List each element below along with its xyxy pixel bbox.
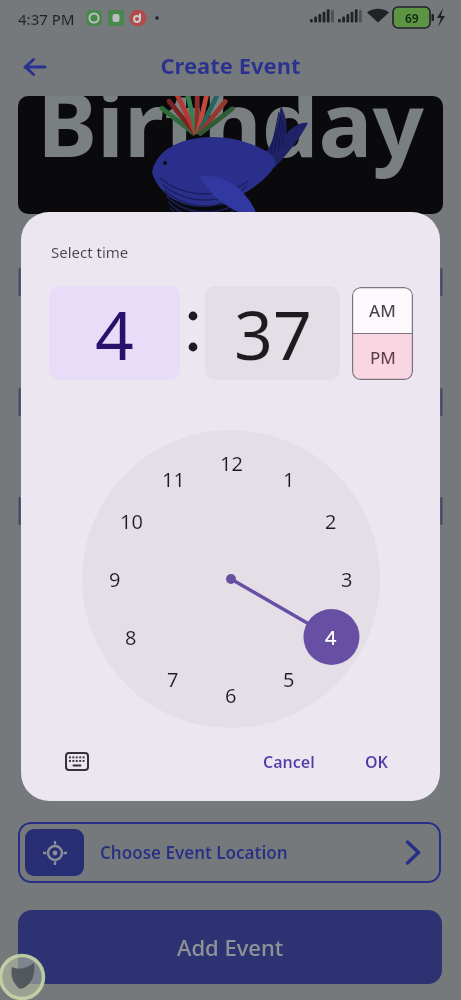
staticText: 8 xyxy=(125,624,137,651)
staticText: 1 xyxy=(283,466,295,493)
button[interactable]: 7 xyxy=(153,659,193,699)
button[interactable]: 5 xyxy=(269,659,309,699)
button[interactable]: 37 xyxy=(205,286,340,380)
button[interactable]: OK xyxy=(345,744,407,780)
staticText: 2 xyxy=(325,508,337,535)
button[interactable]: PM xyxy=(352,334,413,380)
button[interactable]: 9 xyxy=(95,559,135,599)
staticText: Cancel xyxy=(263,751,315,773)
button[interactable]: 6 xyxy=(211,675,251,715)
staticText: Select time xyxy=(51,242,129,262)
staticText: 10 xyxy=(120,508,143,535)
button[interactable]: 4 xyxy=(311,617,351,657)
button[interactable]: 11 xyxy=(153,459,193,499)
button[interactable]: 2 xyxy=(311,501,351,541)
button[interactable]: Cancel xyxy=(249,744,329,780)
button[interactable]: 8 xyxy=(111,617,151,657)
staticText: Birthday xyxy=(18,96,443,179)
button[interactable] xyxy=(18,50,52,84)
staticText: PM xyxy=(370,346,396,369)
staticText: 5 xyxy=(283,666,295,693)
button[interactable]: 4 xyxy=(49,286,180,380)
staticText: OK xyxy=(365,751,388,773)
staticText: 12 xyxy=(220,450,243,477)
button[interactable]: Choose Event Location xyxy=(18,822,441,883)
staticText: Create Event xyxy=(0,50,461,80)
button[interactable]: 10 xyxy=(111,501,151,541)
button[interactable]: Add Event xyxy=(18,910,442,984)
button[interactable]: 12 xyxy=(211,443,251,483)
staticText: 11 xyxy=(162,466,185,493)
staticText: 9 xyxy=(109,566,121,593)
staticText: 7 xyxy=(167,666,179,693)
staticText: 4 xyxy=(325,624,337,651)
staticText: AM xyxy=(369,299,396,322)
staticText: 3 xyxy=(341,566,353,593)
button[interactable]: AM xyxy=(352,287,413,334)
staticText: 6 xyxy=(225,682,237,709)
button[interactable]: 1 xyxy=(269,459,309,499)
staticText: Choose Event Location xyxy=(100,841,288,864)
staticText: Add Event xyxy=(177,932,284,962)
staticText: 4:37 PM xyxy=(18,9,75,29)
staticText: 69 xyxy=(405,10,419,26)
staticText: 4 xyxy=(95,287,134,380)
button[interactable]: 3 xyxy=(327,559,367,599)
staticText: 37 xyxy=(234,287,312,380)
